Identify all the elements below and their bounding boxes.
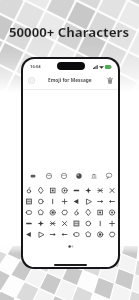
button[interactable]: Symbol 35 xyxy=(59,229,71,240)
button[interactable]: Text xyxy=(101,169,116,182)
button[interactable]: Symbol 26 xyxy=(47,218,59,229)
button[interactable]: Symbol 30 xyxy=(95,218,107,229)
button[interactable]: Places xyxy=(86,169,101,182)
button[interactable]: Symbol 24 xyxy=(23,218,35,229)
button[interactable]: Symbol 18 xyxy=(47,207,59,218)
button[interactable]: Symbol 37 xyxy=(83,229,95,240)
button[interactable]: Symbol 7 xyxy=(107,185,118,196)
button[interactable]: Symbol 10 xyxy=(47,196,59,207)
button[interactable]: Symbol 20 xyxy=(71,207,83,218)
button[interactable]: Symbol 13 xyxy=(83,196,95,207)
button[interactable]: Symbol 29 xyxy=(83,218,95,229)
button[interactable]: Symbol 1 xyxy=(35,185,47,196)
button[interactable]: Symbol 4 xyxy=(71,185,83,196)
button[interactable]: Delete xyxy=(102,72,118,89)
button[interactable]: Symbol 8 xyxy=(23,196,35,207)
button[interactable]: Symbols xyxy=(71,169,86,182)
button[interactable]: Symbol 6 xyxy=(95,185,107,196)
button[interactable]: Symbol 28 xyxy=(71,218,83,229)
staticText: 16:04 xyxy=(30,64,41,70)
button[interactable]: Symbol 21 xyxy=(83,207,95,218)
button[interactable]: Recent xyxy=(25,169,41,182)
button[interactable]: Emoticons xyxy=(56,169,71,182)
staticText: 50000+ Characters xyxy=(9,23,130,41)
button[interactable]: Symbol 23 xyxy=(107,207,118,218)
staticText: Emoji for Message xyxy=(48,77,92,84)
button[interactable]: Symbol 38 xyxy=(95,229,107,240)
button[interactable]: Symbol 27 xyxy=(59,218,71,229)
button[interactable]: Symbol 32 xyxy=(23,229,35,240)
button[interactable]: Symbol 2 xyxy=(47,185,59,196)
button[interactable]: Settings xyxy=(23,72,39,89)
button[interactable]: Symbol 33 xyxy=(35,229,47,240)
button[interactable]: Symbol 31 xyxy=(107,218,118,229)
button[interactable]: Symbol 9 xyxy=(35,196,47,207)
button[interactable]: Smileys xyxy=(41,169,56,182)
button[interactable]: Symbol 5 xyxy=(83,185,95,196)
button[interactable]: Symbol 22 xyxy=(95,207,107,218)
button[interactable]: Symbol 0 xyxy=(23,185,35,196)
button[interactable]: Symbol 19 xyxy=(59,207,71,218)
button[interactable]: Symbol 36 xyxy=(71,229,83,240)
button[interactable]: Symbol 3 xyxy=(59,185,71,196)
button[interactable]: Symbol 17 xyxy=(35,207,47,218)
button[interactable]: Symbol 16 xyxy=(23,207,35,218)
button[interactable]: Symbol 15 xyxy=(107,196,118,207)
button[interactable]: Symbol 14 xyxy=(95,196,107,207)
button[interactable]: Symbol 25 xyxy=(35,218,47,229)
button[interactable]: Symbol 34 xyxy=(47,229,59,240)
button[interactable]: Symbol 39 xyxy=(107,229,118,240)
button[interactable]: Symbol 11 xyxy=(59,196,71,207)
button[interactable]: Symbol 12 xyxy=(71,196,83,207)
